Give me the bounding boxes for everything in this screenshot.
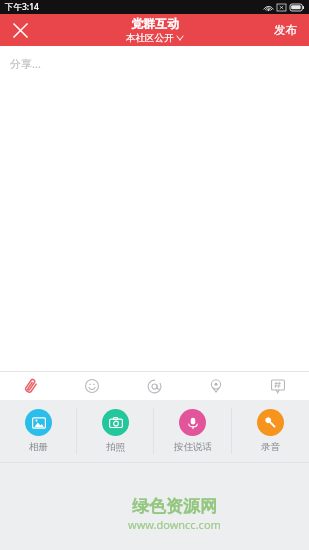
button[interactable]: Close [0, 14, 40, 46]
button[interactable]: 党群互动 [126, 16, 183, 44]
button[interactable]: 发布 [262, 14, 309, 46]
button[interactable]: Emoji [61, 372, 123, 400]
button[interactable]: Location [185, 372, 247, 400]
staticText: 发布 [274, 23, 297, 37]
staticText: 分享... [10, 56, 41, 71]
button[interactable]: Attach [0, 372, 61, 400]
button[interactable]: Topic [247, 372, 309, 400]
staticText: 本社区公开 [126, 32, 174, 44]
staticText: 录音 [261, 441, 280, 453]
staticText: 按住说话 [174, 441, 212, 453]
button[interactable]: 按住说话 [154, 400, 231, 462]
staticText: www.downcc.com [128, 517, 221, 532]
staticText: 相册 [29, 441, 48, 453]
staticText: 党群互动 [131, 16, 179, 31]
button[interactable]: Mention [123, 372, 185, 400]
staticText: 绿色资源网 [132, 496, 217, 517]
button[interactable]: 相册 [0, 400, 76, 462]
button[interactable]: 录音 [232, 400, 309, 462]
staticText: 拍照 [106, 441, 125, 453]
button[interactable]: 拍照 [77, 400, 153, 462]
staticText: 下午3:14 [5, 1, 39, 13]
